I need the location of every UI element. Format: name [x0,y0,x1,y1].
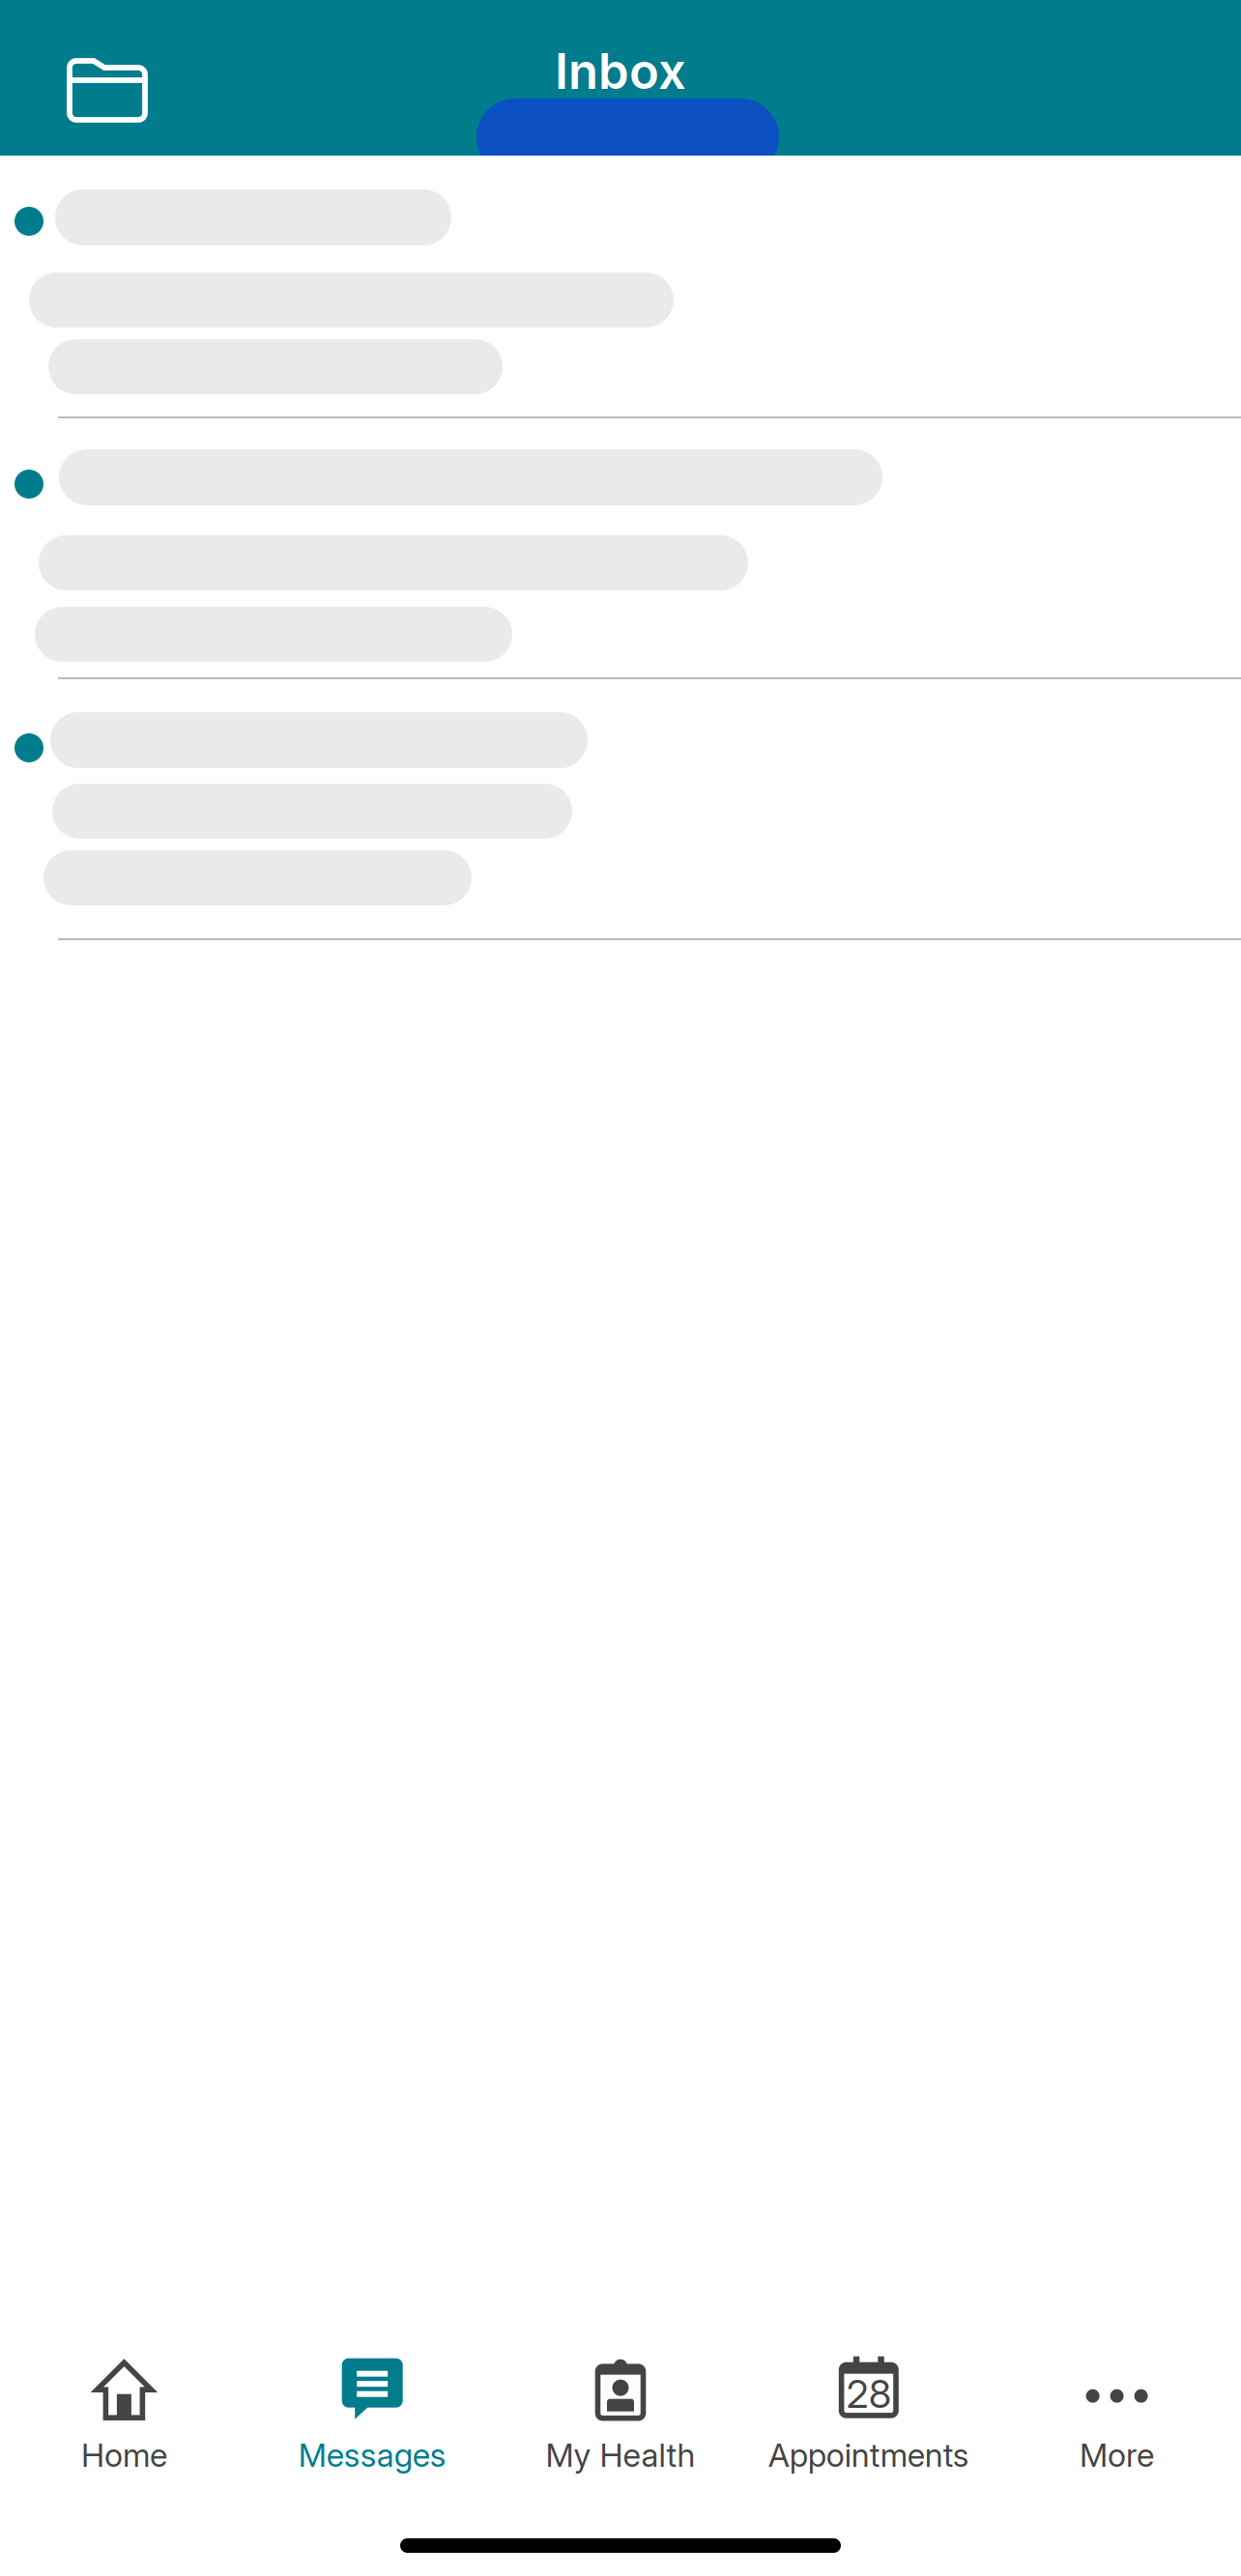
button[interactable] [0,156,1241,418]
staticText: More [1080,2436,1154,2475]
staticText: Home [81,2436,167,2475]
staticText: 28 [846,2370,891,2417]
button[interactable]: My Health [496,2339,745,2480]
button[interactable]: Folders [0,0,177,156]
staticText: Appointments [768,2436,969,2475]
button[interactable]: Home [0,2339,248,2480]
button[interactable] [0,679,1241,940]
staticText: Messages [298,2436,446,2475]
button[interactable]: More [993,2339,1241,2480]
button[interactable]: 28 [745,2339,993,2480]
staticText: Inbox [555,42,686,101]
button[interactable] [0,418,1241,679]
staticText: My Health [546,2436,695,2475]
button[interactable]: Messages [248,2339,496,2480]
